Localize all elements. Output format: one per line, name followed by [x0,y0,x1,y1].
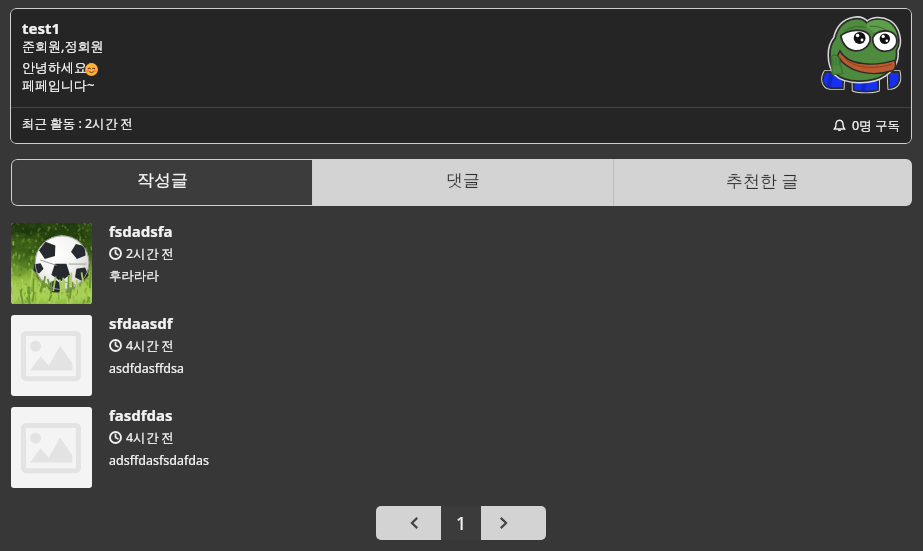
staticText: asdfdasffdsa [109,360,184,377]
staticText: sfdaasdf [109,313,173,333]
staticText: 댓글 [446,170,480,191]
button[interactable]: Previous page [376,506,441,540]
staticText: fasdfdas [109,405,173,425]
button[interactable]: fsdadsfa [0,223,923,305]
button[interactable]: 0명 구독 [833,112,900,138]
staticText: 1 [456,511,467,536]
button[interactable]: 추천한 글 [613,159,912,206]
staticText: 4시간 전 [126,429,174,446]
staticText: 추천한 글 [726,169,799,192]
staticText: 준회원,정회원 [22,37,104,55]
button[interactable]: 작성글 [11,159,313,206]
button[interactable]: fasdfdas [0,407,923,489]
staticText: 안녕하세요 [22,59,87,75]
staticText: adsffdasfsdafdas [109,452,209,469]
staticText: 작성글 [137,170,188,191]
button[interactable]: 댓글 [313,159,613,206]
button[interactable]: 1 [441,506,481,540]
staticText: 페페입니다~ [22,76,95,94]
button[interactable]: Next page [481,506,546,540]
staticText: 4시간 전 [126,337,174,354]
staticText: fsdadsfa [109,221,173,241]
staticText: 0명 구독 [852,117,900,134]
staticText: 최근 활동 : 2시간 전 [22,115,134,132]
staticText: 2시간 전 [126,245,174,262]
button[interactable]: sfdaasdf [0,315,923,397]
staticText: test1 [22,18,61,38]
staticText: 후라라라 [109,268,159,284]
